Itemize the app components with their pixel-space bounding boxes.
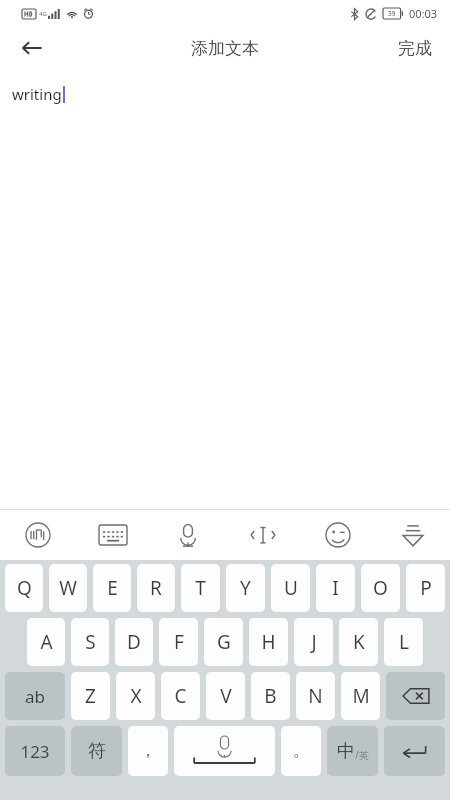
- staticText: R: [150, 575, 162, 601]
- staticText: D: [127, 629, 141, 655]
- button[interactable]: Input method: [0, 510, 75, 560]
- button[interactable]: J: [294, 618, 333, 666]
- staticText: writing: [12, 84, 62, 104]
- staticText: F: [174, 629, 184, 655]
- staticText: 。: [293, 741, 309, 761]
- button[interactable]: V: [206, 672, 245, 720]
- staticText: W: [59, 575, 77, 601]
- staticText: J: [311, 629, 317, 655]
- button[interactable]: Emoji: [300, 510, 375, 560]
- button[interactable]: 符: [71, 726, 122, 776]
- staticText: Y: [240, 575, 251, 601]
- button[interactable]: S: [71, 618, 109, 666]
- button[interactable]: Backspace: [386, 672, 445, 720]
- button[interactable]: X: [116, 672, 155, 720]
- button[interactable]: D: [115, 618, 153, 666]
- staticText: 00:03: [409, 6, 438, 21]
- button[interactable]: G: [204, 618, 243, 666]
- staticText: 中: [337, 740, 355, 763]
- button[interactable]: B: [251, 672, 290, 720]
- staticText: ab: [25, 685, 45, 708]
- staticText: I: [332, 575, 339, 601]
- staticText: V: [220, 683, 232, 709]
- button[interactable]: Z: [71, 672, 110, 720]
- button[interactable]: ab: [5, 672, 65, 720]
- button[interactable]: Q: [5, 564, 43, 612]
- staticText: H: [261, 629, 276, 655]
- staticText: 添加文本: [191, 38, 259, 59]
- staticText: ，: [140, 741, 156, 761]
- staticText: K: [353, 629, 365, 655]
- staticText: E: [107, 575, 118, 601]
- staticText: M: [352, 683, 370, 709]
- button[interactable]: Space: [174, 726, 275, 776]
- staticText: C: [174, 683, 187, 709]
- staticText: A: [40, 629, 53, 655]
- button[interactable]: Back: [8, 26, 56, 70]
- staticText: N: [308, 683, 323, 709]
- staticText: 39: [388, 9, 396, 18]
- staticText: O: [373, 575, 388, 601]
- staticText: 4G: [39, 10, 47, 18]
- button[interactable]: F: [159, 618, 198, 666]
- button[interactable]: L: [384, 618, 423, 666]
- staticText: U: [284, 575, 298, 601]
- staticText: 符: [88, 740, 106, 763]
- button[interactable]: 完成: [380, 30, 450, 67]
- staticText: Q: [17, 575, 32, 601]
- button[interactable]: I: [316, 564, 355, 612]
- button[interactable]: 中: [327, 726, 378, 776]
- button[interactable]: H: [249, 618, 288, 666]
- button[interactable]: W: [49, 564, 87, 612]
- button[interactable]: Enter: [384, 726, 445, 776]
- staticText: L: [399, 629, 409, 655]
- staticText: P: [420, 575, 432, 601]
- button[interactable]: Voice input: [150, 510, 225, 560]
- button[interactable]: U: [271, 564, 310, 612]
- button[interactable]: 。: [281, 726, 321, 776]
- button[interactable]: ，: [128, 726, 168, 776]
- staticText: 123: [20, 740, 50, 763]
- button[interactable]: Keyboard layout: [75, 510, 150, 560]
- button[interactable]: Hide keyboard: [375, 510, 450, 560]
- button[interactable]: A: [27, 618, 65, 666]
- staticText: Z: [85, 683, 96, 709]
- button[interactable]: K: [339, 618, 378, 666]
- staticText: T: [195, 575, 206, 601]
- staticText: 完成: [398, 38, 432, 59]
- button[interactable]: P: [406, 564, 445, 612]
- button[interactable]: E: [93, 564, 131, 612]
- button[interactable]: T: [181, 564, 220, 612]
- button[interactable]: M: [341, 672, 380, 720]
- button[interactable]: R: [137, 564, 175, 612]
- button[interactable]: Y: [226, 564, 265, 612]
- staticText: /英: [355, 748, 369, 762]
- staticText: S: [85, 629, 96, 655]
- button[interactable]: N: [296, 672, 335, 720]
- staticText: X: [130, 683, 142, 709]
- button[interactable]: 123: [5, 726, 65, 776]
- button[interactable]: O: [361, 564, 400, 612]
- button[interactable]: Move cursor: [225, 510, 300, 560]
- staticText: B: [264, 683, 277, 709]
- staticText: G: [217, 629, 231, 655]
- button[interactable]: C: [161, 672, 200, 720]
